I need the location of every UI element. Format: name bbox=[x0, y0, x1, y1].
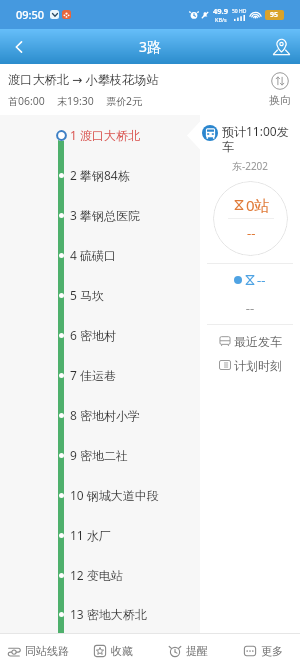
staticText: 11 水厂 bbox=[70, 527, 111, 543]
staticText: 最近发车 bbox=[234, 334, 282, 349]
staticText: 1 渡口大桥北 bbox=[70, 127, 140, 143]
staticText: 提醒 bbox=[186, 644, 208, 658]
button[interactable]: 更多 bbox=[225, 634, 300, 667]
button[interactable]: 13 密地大桥北 bbox=[0, 595, 200, 633]
button[interactable]: 换向 bbox=[259, 64, 300, 115]
staticText: 6 密地村 bbox=[70, 327, 116, 343]
button[interactable]: 10 钢城大道中段 bbox=[0, 475, 200, 515]
staticText: 5 马坎 bbox=[70, 287, 104, 303]
staticText: 49.9 bbox=[213, 6, 228, 16]
staticText: 渡口大桥北 → 小攀枝花场站 bbox=[8, 71, 159, 88]
button[interactable]: 3 攀钢总医院 bbox=[0, 195, 200, 235]
staticText: KB/s bbox=[215, 16, 227, 23]
button[interactable]: Map bbox=[262, 29, 300, 64]
staticText: 计划时刻 bbox=[234, 358, 282, 373]
button[interactable]: 1 渡口大桥北 bbox=[0, 115, 200, 155]
staticText: 更多 bbox=[261, 644, 283, 658]
button[interactable]: 2 攀钢84栋 bbox=[0, 155, 200, 195]
button[interactable]: 4 硫磺口 bbox=[0, 235, 200, 275]
staticText: 8 密地村小学 bbox=[70, 407, 140, 423]
button[interactable]: 9 密地二社 bbox=[0, 435, 200, 475]
staticText: 95 bbox=[270, 10, 279, 20]
staticText: 0站 bbox=[246, 195, 270, 215]
staticText: 同站线路 bbox=[25, 644, 69, 658]
staticText: 首 bbox=[8, 95, 18, 108]
button[interactable]: 最近发车 bbox=[200, 330, 300, 352]
staticText: 19:30 bbox=[67, 94, 94, 108]
staticText: 7 佳运巷 bbox=[70, 367, 116, 383]
staticText: 收藏 bbox=[111, 644, 133, 658]
staticText: 换向 bbox=[269, 93, 291, 107]
button[interactable]: 12 变电站 bbox=[0, 555, 200, 595]
staticText: 票价 bbox=[106, 95, 126, 108]
staticText: 2 攀钢84栋 bbox=[70, 167, 130, 183]
staticText: -- bbox=[257, 271, 266, 289]
button[interactable]: 7 佳运巷 bbox=[0, 355, 200, 395]
button[interactable]: 5 马坎 bbox=[0, 275, 200, 315]
staticText: -- bbox=[200, 299, 300, 317]
button[interactable]: 8 密地村小学 bbox=[0, 395, 200, 435]
staticText: 9 密地二社 bbox=[70, 447, 128, 463]
staticText: 13 密地大桥北 bbox=[70, 606, 147, 622]
staticText: 4 硫磺口 bbox=[70, 247, 116, 263]
staticText: 2元 bbox=[126, 94, 143, 108]
button[interactable]: 6 密地村 bbox=[0, 315, 200, 355]
button[interactable]: 提醒 bbox=[150, 634, 225, 667]
button[interactable]: 同站线路 bbox=[0, 634, 75, 667]
staticText: 末 bbox=[57, 95, 67, 108]
button[interactable]: Back bbox=[0, 29, 38, 64]
staticText: 预计11:00发车 bbox=[222, 123, 297, 155]
button[interactable]: 计划时刻 bbox=[200, 354, 300, 376]
staticText: 50 HD bbox=[232, 8, 247, 15]
staticText: 东-2202 bbox=[200, 159, 300, 173]
staticText: 3路 bbox=[139, 37, 162, 56]
staticText: -- bbox=[247, 224, 256, 242]
staticText: 09:50 bbox=[16, 7, 45, 22]
button[interactable]: 收藏 bbox=[75, 634, 150, 667]
staticText: 12 变电站 bbox=[70, 567, 123, 583]
staticText: 3 攀钢总医院 bbox=[70, 207, 140, 223]
staticText: 06:00 bbox=[18, 94, 45, 108]
staticText: 10 钢城大道中段 bbox=[70, 487, 159, 503]
button[interactable]: 11 水厂 bbox=[0, 515, 200, 555]
